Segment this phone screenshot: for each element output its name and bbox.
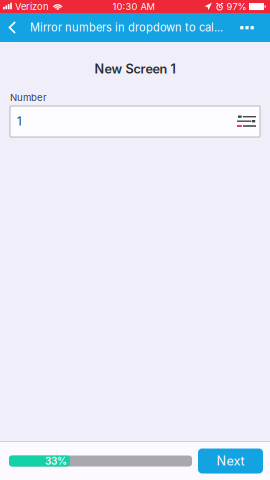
- button[interactable]: More options: [232, 13, 262, 42]
- staticText: Verizon: [15, 1, 49, 12]
- staticText: 10:30 AM: [112, 1, 154, 12]
- staticText: 1: [17, 115, 22, 128]
- button[interactable]: Back: [0, 13, 24, 42]
- staticText: New Screen 1: [94, 61, 175, 77]
- button[interactable]: Next: [198, 448, 263, 473]
- button[interactable]: 1: [10, 106, 260, 137]
- staticText: 97%: [226, 1, 246, 12]
- staticText: Next: [216, 453, 244, 469]
- staticText: 33%: [45, 455, 67, 467]
- staticText: Number: [10, 92, 47, 103]
- staticText: Mirror numbers in dropdown to cal...: [30, 21, 223, 34]
